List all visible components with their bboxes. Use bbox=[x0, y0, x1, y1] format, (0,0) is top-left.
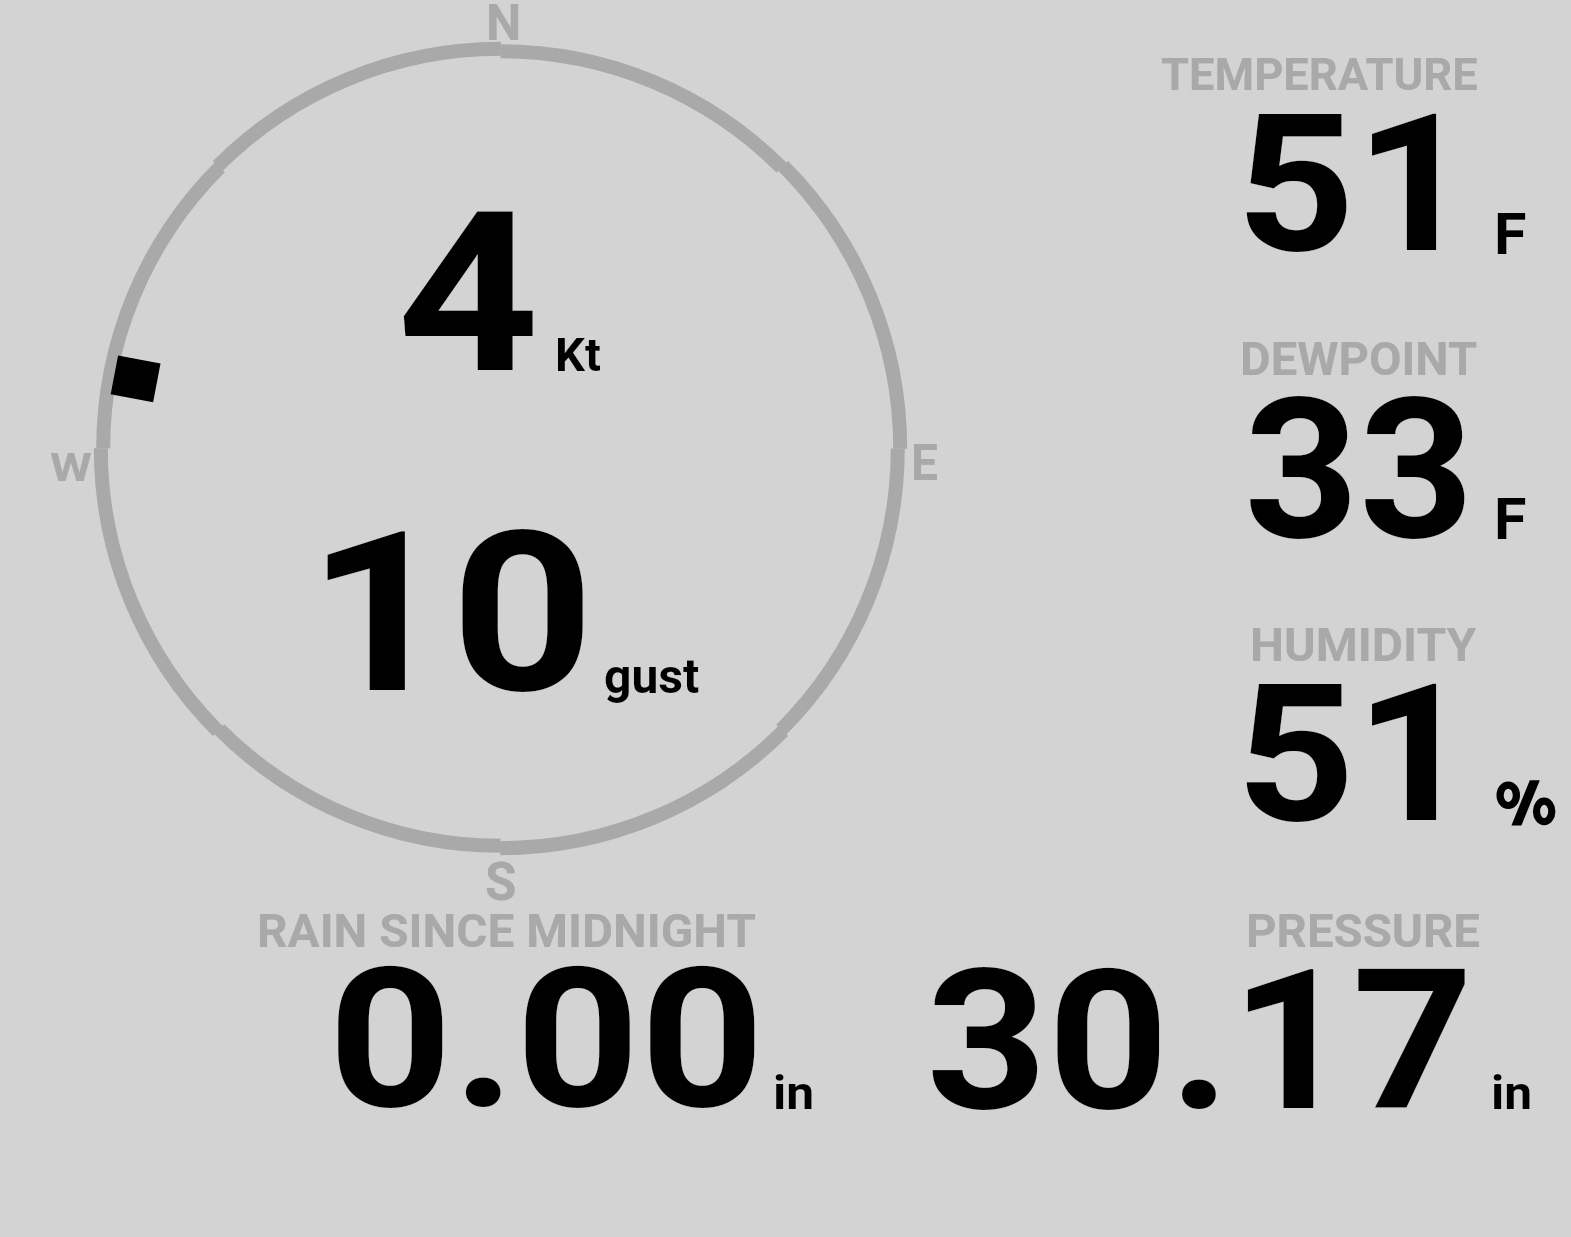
staticText: F bbox=[1494, 486, 1527, 553]
staticText: 33 bbox=[1244, 356, 1474, 585]
button[interactable]: Pressure 30.17 in bbox=[880, 880, 1571, 1130]
staticText: F bbox=[1494, 201, 1527, 268]
staticText: 0.00 bbox=[328, 925, 765, 1154]
staticText: E bbox=[911, 434, 939, 493]
button[interactable]: Dewpoint 33 F bbox=[1100, 300, 1571, 560]
staticText: Kt bbox=[555, 328, 601, 382]
staticText: RAIN SINCE MIDNIGHT bbox=[257, 903, 757, 958]
staticText: in bbox=[773, 1065, 814, 1120]
staticText: PRESSURE bbox=[1246, 903, 1480, 958]
staticText: in bbox=[1491, 1065, 1532, 1120]
button[interactable]: Humidity 51 percent bbox=[1100, 590, 1571, 850]
staticText: gust bbox=[604, 648, 700, 704]
staticText: W bbox=[50, 446, 93, 491]
staticText: S bbox=[485, 851, 517, 913]
staticText: DEWPOINT bbox=[1240, 331, 1478, 386]
button[interactable]: Wind 4 knots gusting 10, direction west … bbox=[60, 10, 940, 890]
button[interactable]: Temperature 51 F bbox=[1100, 20, 1571, 280]
staticText: N bbox=[486, 0, 522, 53]
button[interactable]: Rain since midnight 0.00 in bbox=[230, 880, 840, 1130]
staticText: 4 bbox=[397, 163, 539, 424]
staticText: HUMIDITY bbox=[1250, 617, 1477, 672]
staticText: 10 bbox=[307, 483, 594, 744]
staticText: 51 bbox=[1236, 72, 1475, 297]
staticText: 30.17 bbox=[926, 927, 1474, 1156]
staticText: TEMPERATURE bbox=[1161, 48, 1478, 101]
staticText: 51 bbox=[1236, 642, 1475, 867]
